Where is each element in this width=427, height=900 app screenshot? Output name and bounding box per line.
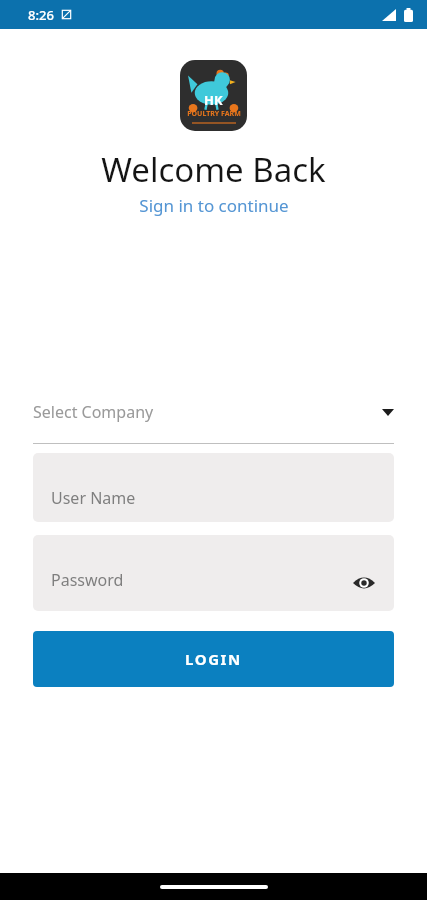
staticText: Sign in to continue [139, 194, 289, 217]
staticText: Select Company [33, 401, 154, 423]
staticText: User Name [51, 487, 136, 509]
button[interactable]: Select Company [33, 393, 394, 444]
staticText: POULTRY FARM [187, 109, 241, 119]
button[interactable]: LOGIN [33, 631, 394, 687]
staticText: LOGIN [185, 649, 242, 669]
button[interactable]: Show password [348, 567, 380, 599]
staticText: Password [51, 569, 124, 591]
button[interactable]: Password [33, 535, 394, 611]
button[interactable]: User Name [33, 453, 394, 522]
staticText: Welcome Back [101, 147, 326, 192]
staticText: HK [204, 91, 223, 109]
staticText: 8:26 [28, 6, 54, 24]
